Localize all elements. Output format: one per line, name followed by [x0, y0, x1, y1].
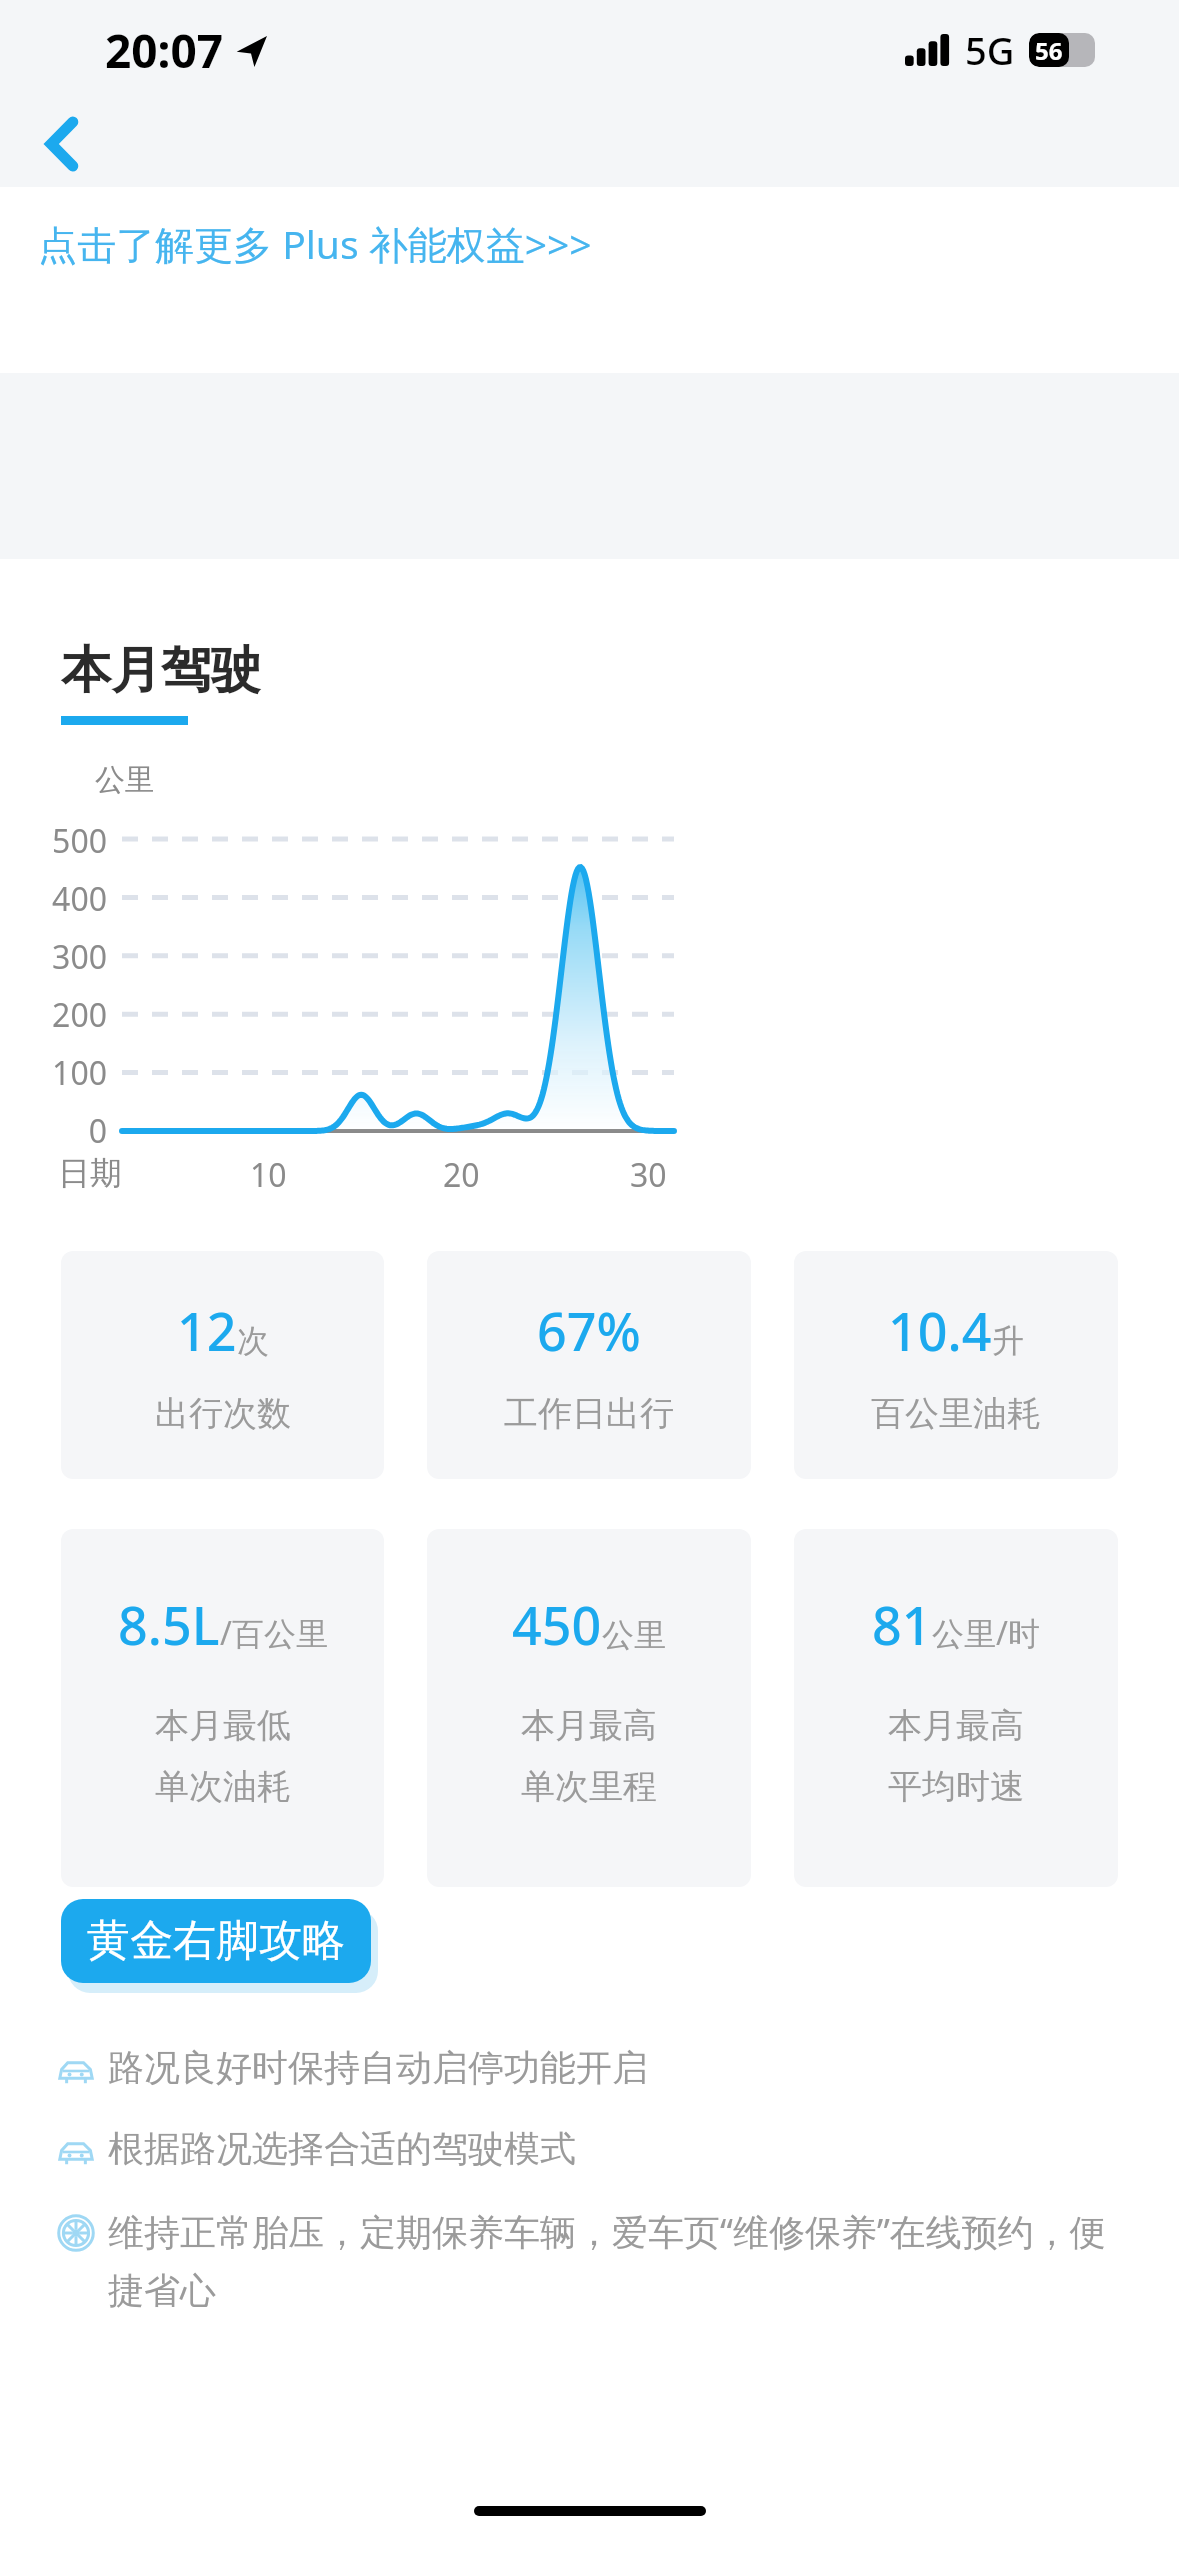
staticText: 400 — [45, 877, 107, 921]
button[interactable]: 维持正常胎压，定期保养车辆，爱车页“维修保养”在线预约，便捷省心 — [58, 2207, 1134, 2314]
staticText: 日期 — [58, 1153, 122, 1193]
staticText: 百公里油耗 — [871, 1392, 1041, 1435]
staticText: 450 — [512, 1589, 602, 1660]
staticText: 100 — [45, 1051, 107, 1095]
staticText: 次 — [237, 1321, 269, 1361]
staticText: 路况良好时保持自动启停功能开启 — [108, 2045, 648, 2090]
button[interactable]: 12 — [61, 1251, 384, 1479]
staticText: 81 — [872, 1589, 932, 1660]
button[interactable]: 10.4 — [794, 1251, 1118, 1479]
staticText: 0 — [45, 1109, 107, 1153]
staticText: 公里 — [602, 1615, 666, 1655]
staticText: 500 — [45, 819, 107, 863]
button[interactable]: 路况良好时保持自动启停功能开启 — [58, 2045, 1134, 2090]
staticText: 公里/时 — [932, 1611, 1040, 1655]
staticText: 根据路况选择合适的驾驶模式 — [108, 2126, 576, 2171]
button[interactable]: 8.5L — [61, 1529, 384, 1887]
staticText: /百公里 — [220, 1611, 328, 1655]
staticText: 10 — [250, 1153, 287, 1197]
staticText: 20 — [443, 1153, 480, 1197]
staticText: 12 — [177, 1295, 237, 1366]
staticText: 300 — [45, 935, 107, 979]
staticText: 工作日出行 — [504, 1392, 674, 1435]
staticText: 本月最高 — [888, 1704, 1024, 1747]
staticText: 点击了解更多 Plus 补能权益>>> — [38, 217, 592, 270]
staticText: 单次油耗 — [155, 1765, 291, 1808]
staticText: 56 — [1035, 34, 1063, 67]
staticText: 平均时速 — [888, 1765, 1024, 1808]
staticText: 10.4 — [888, 1295, 992, 1366]
staticText: 升 — [992, 1321, 1024, 1361]
button[interactable]: 黄金右脚攻略 — [61, 1899, 371, 1983]
staticText: 公里 — [95, 761, 155, 799]
staticText: 30 — [630, 1153, 667, 1197]
staticText: 黄金右脚攻略 — [94, 1924, 352, 1978]
staticText: 维持正常胎压，定期保养车辆，爱车页“维修保养”在线预约，便捷省心 — [108, 2207, 1134, 2314]
button[interactable]: 点击了解更多 Plus 补能权益>>> — [0, 187, 1179, 300]
staticText: 黄金右脚攻略 — [87, 1914, 345, 1968]
staticText: 200 — [45, 993, 107, 1037]
staticText: 本月驾驶 — [61, 639, 261, 702]
staticText: 20:07 — [105, 19, 224, 82]
staticText: 5G — [965, 24, 1015, 76]
button[interactable]: 81 — [794, 1529, 1118, 1887]
staticText: 本月最高 — [521, 1704, 657, 1747]
staticText: 单次里程 — [521, 1765, 657, 1808]
button[interactable]: 450 — [427, 1529, 751, 1887]
staticText: 出行次数 — [155, 1392, 291, 1435]
button[interactable]: 根据路况选择合适的驾驶模式 — [58, 2126, 1134, 2171]
staticText: 8.5L — [118, 1589, 220, 1660]
staticText: 67% — [537, 1295, 641, 1366]
button[interactable]: 67% — [427, 1251, 751, 1479]
button[interactable]: Back — [20, 102, 104, 186]
staticText: 本月最低 — [155, 1704, 291, 1747]
